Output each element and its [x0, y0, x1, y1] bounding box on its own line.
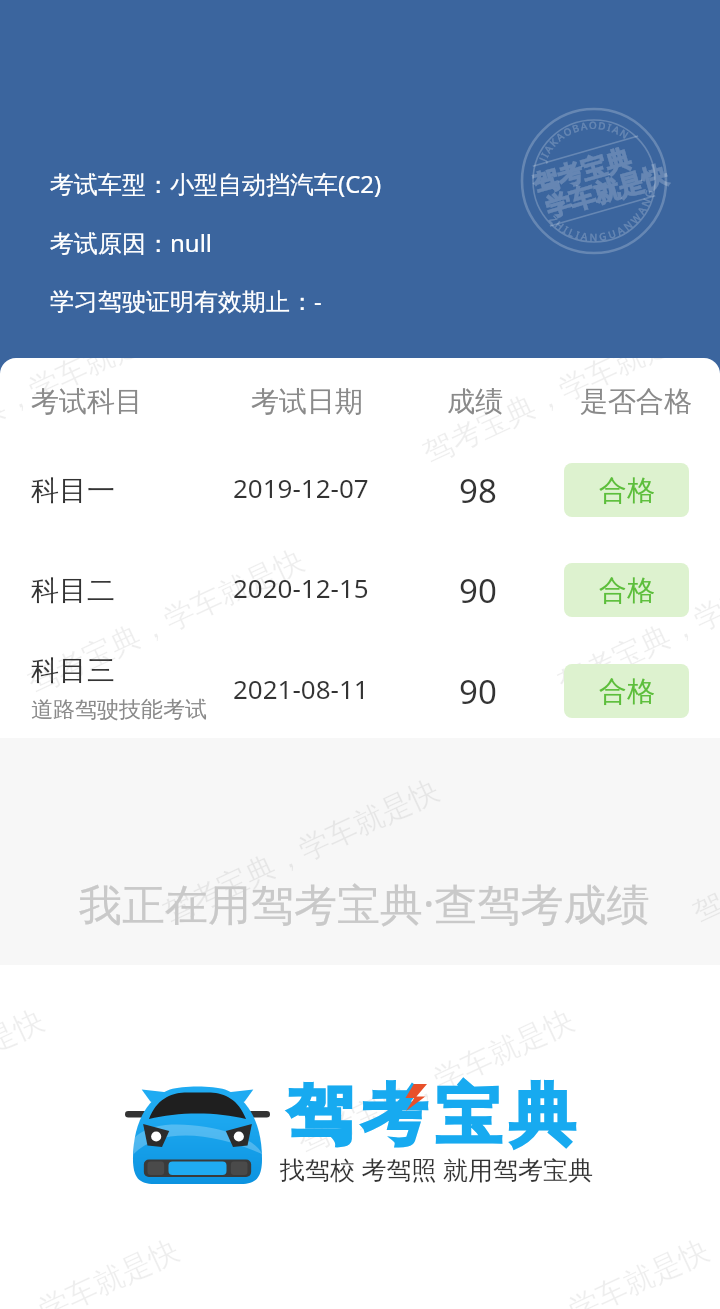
staticText: 2020-12-15 [233, 570, 369, 605]
staticText: 学习驾驶证明有效期止：- [50, 284, 322, 317]
staticText: 合格 [599, 573, 655, 608]
button[interactable]: 科目二 [0, 555, 720, 625]
staticText: 道路驾驶技能考试 [31, 696, 207, 723]
staticText: 考试原因：null [50, 226, 213, 259]
staticText: 驾考宝典 [283, 1074, 579, 1157]
other: 驾考宝典官方认证印章 [520, 107, 668, 255]
staticText: 考试科目 [31, 384, 143, 419]
staticText: 考试车型：小型自动挡汽车(C2) [50, 167, 382, 200]
button[interactable]: 合格 [564, 664, 689, 718]
staticText: 90 [459, 568, 497, 613]
button[interactable]: 合格 [564, 563, 689, 617]
staticText: 98 [459, 468, 497, 513]
staticText: 我正在用驾考宝典·查驾考成绩 [79, 874, 650, 933]
staticText: 合格 [599, 473, 655, 508]
staticText: 科目二 [31, 573, 115, 608]
button[interactable]: 合格 [564, 463, 689, 517]
staticText: 找驾校 考驾照 就用驾考宝典 [280, 1152, 594, 1186]
button[interactable]: 科目三 [0, 656, 720, 726]
staticText: 90 [459, 669, 497, 714]
staticText: 科目一 [31, 473, 115, 508]
staticText: 是否合格 [580, 384, 692, 419]
button[interactable]: 科目一 [0, 455, 720, 525]
staticText: 成绩 [447, 384, 503, 419]
staticText: 考试日期 [251, 384, 363, 419]
staticText: 2019-12-07 [233, 470, 369, 505]
staticText: 合格 [599, 674, 655, 709]
staticText: 2021-08-11 [233, 671, 369, 706]
staticText: 科目三 [31, 653, 115, 688]
